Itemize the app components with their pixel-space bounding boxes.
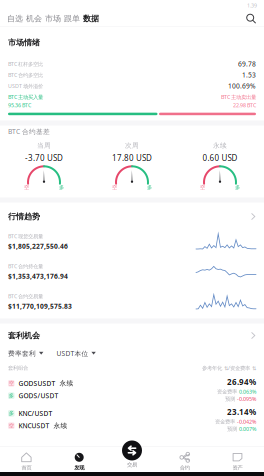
staticText: 套利机会 bbox=[8, 331, 40, 340]
staticText: $1,353,473,176.94 bbox=[8, 272, 68, 280]
staticText: 多 bbox=[9, 410, 14, 417]
staticText: KNCUSDT bbox=[18, 421, 49, 430]
staticText: 95.36 BTC bbox=[8, 102, 31, 109]
staticText: 22.98 BTC bbox=[233, 102, 256, 109]
button[interactable] bbox=[106, 447, 158, 470]
button[interactable]: 自选 bbox=[5, 11, 24, 26]
staticText: 首页 bbox=[21, 464, 31, 471]
staticText: 1.53 bbox=[242, 71, 256, 79]
staticText: 0.60 USD bbox=[202, 153, 237, 163]
staticText: BTC 合约持仓量 bbox=[8, 262, 43, 270]
staticText: 发现 bbox=[74, 464, 84, 471]
staticText: 行情趋势 bbox=[8, 212, 40, 221]
button[interactable]: 资产 bbox=[211, 447, 264, 470]
button[interactable]: 多 bbox=[0, 404, 264, 434]
staticText: $11,770,109,575.83 bbox=[8, 302, 72, 310]
button[interactable]: 机会 bbox=[24, 11, 43, 26]
staticText: 多 bbox=[9, 392, 14, 399]
staticText: -0.042% bbox=[237, 418, 256, 425]
staticText: 当周 bbox=[37, 141, 51, 150]
button[interactable]: USDT本位 bbox=[56, 345, 96, 361]
staticText: 套利组合 bbox=[8, 365, 28, 371]
staticText: 合约 bbox=[180, 464, 190, 471]
staticText: 次周 bbox=[125, 141, 139, 150]
staticText: BTC 合约交易量 bbox=[8, 292, 43, 300]
button[interactable]: BTC 合约持仓量 bbox=[0, 256, 264, 286]
staticText: 空 bbox=[9, 380, 14, 387]
staticText: 资产 bbox=[233, 464, 243, 471]
staticText: 多 bbox=[147, 184, 152, 191]
staticText: GODS/USDT bbox=[18, 391, 58, 400]
button[interactable]: BTC 合约交易量 bbox=[0, 286, 264, 316]
staticText: 17.80 USD bbox=[112, 153, 152, 163]
staticText: 0.063% bbox=[239, 388, 256, 395]
staticText: 1.39 bbox=[247, 2, 257, 9]
staticText: 多 bbox=[235, 184, 240, 191]
staticText: 资金费率 bbox=[215, 418, 235, 425]
staticText: 26.94% bbox=[227, 377, 256, 387]
staticText: BTC 合约多空比 bbox=[8, 71, 43, 78]
staticText: BTC 合约基差 bbox=[8, 127, 50, 136]
staticText: BTC 杠杆多空比 bbox=[8, 60, 43, 67]
staticText: 空 bbox=[9, 422, 14, 429]
staticText: 机会 bbox=[26, 14, 42, 23]
button[interactable]: 发现 bbox=[53, 447, 106, 470]
staticText: 23.14% bbox=[227, 407, 256, 417]
staticText: 69.78 bbox=[238, 60, 256, 68]
button[interactable]: 跟单 bbox=[62, 11, 81, 26]
staticText: -3.70 USD bbox=[25, 153, 63, 163]
staticText: $1,805,227,550.46 bbox=[8, 242, 68, 250]
staticText: 自选 bbox=[7, 14, 23, 23]
staticText: 市场情绪 bbox=[8, 38, 40, 47]
staticText: USDT本位 bbox=[56, 349, 88, 358]
staticText: 空 bbox=[112, 184, 117, 191]
staticText: -0.095% bbox=[237, 395, 256, 402]
staticText: 数据 bbox=[83, 14, 99, 23]
staticText: KNC/USDT bbox=[18, 409, 52, 418]
staticText: 资金费率 bbox=[217, 388, 237, 395]
staticText: 费率套利 bbox=[8, 349, 36, 358]
staticText: 100.69% bbox=[228, 82, 256, 90]
staticText: 永续 bbox=[53, 422, 67, 430]
staticText: 参考年化 ⇅/资金费率 ⇅ bbox=[202, 364, 256, 372]
button[interactable]: 交易 bbox=[122, 446, 142, 474]
button[interactable]: 空 bbox=[0, 374, 264, 404]
staticText: 永续 bbox=[213, 141, 227, 150]
button[interactable]: 首页 bbox=[0, 447, 53, 470]
staticText: 交易 bbox=[127, 461, 137, 468]
button[interactable]: 市场 bbox=[43, 11, 62, 26]
button[interactable]: 数据 bbox=[81, 11, 100, 26]
button[interactable]: BTC 现货交易量 bbox=[0, 226, 264, 256]
staticText: GODSUSDT bbox=[18, 379, 55, 388]
staticText: 空 bbox=[24, 184, 29, 191]
staticText: 跟单 bbox=[64, 14, 80, 23]
staticText: USDT 场外溢价 bbox=[8, 82, 43, 89]
staticText: 预测 bbox=[225, 396, 235, 402]
staticText: 空 bbox=[200, 184, 205, 191]
staticText: BTC 主动买入量 bbox=[8, 93, 43, 101]
button[interactable]: 费率套利 bbox=[8, 345, 43, 361]
button[interactable]: 搜索 bbox=[238, 11, 264, 26]
staticText: 0.007% bbox=[239, 425, 256, 432]
button[interactable]: 合约 bbox=[158, 447, 211, 470]
staticText: 市场 bbox=[45, 14, 61, 23]
staticText: 多 bbox=[59, 184, 64, 191]
staticText: 预测 bbox=[227, 426, 237, 432]
staticText: BTC 现货交易量 bbox=[8, 232, 43, 240]
staticText: BTC 主动卖出量 bbox=[221, 93, 256, 101]
staticText: 永续 bbox=[59, 379, 73, 387]
